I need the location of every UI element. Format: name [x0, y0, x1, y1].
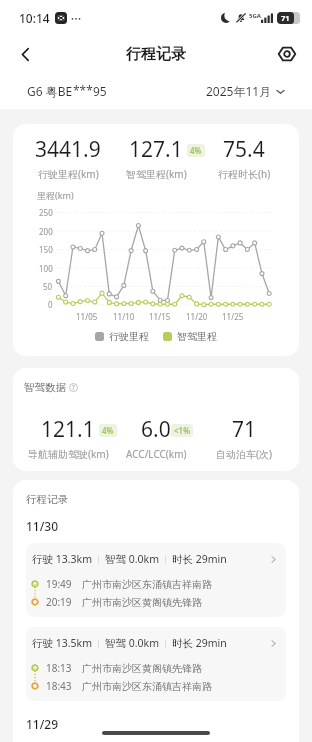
staticText: 150	[39, 244, 53, 255]
staticText: 广州市南沙区黄阁镇先锋路	[82, 596, 202, 609]
staticText: 广州市南沙区东涌镇吉祥南路	[82, 680, 212, 693]
staticText: 4%	[190, 145, 202, 156]
staticText: 11/29	[26, 716, 59, 732]
staticText: 19:49	[46, 577, 72, 591]
staticText: 50	[43, 281, 53, 292]
staticText: 75.4	[223, 135, 265, 164]
staticText: 智驾数据	[24, 381, 66, 394]
staticText: 行驶 13.3km	[32, 552, 92, 566]
staticText: ***	[73, 82, 93, 98]
staticText: 95	[93, 83, 107, 99]
button[interactable]: Settings	[272, 39, 302, 69]
button[interactable]: Back	[10, 39, 40, 69]
staticText: G6 粤BE	[27, 83, 73, 99]
staticText: 自动泊车(次)	[216, 447, 272, 461]
staticText: 智驾 0.0km	[105, 552, 159, 566]
staticText: 6.0	[141, 415, 171, 444]
staticText: 2025年11月	[206, 83, 272, 99]
staticText: 10:14	[19, 10, 50, 26]
staticText: 18:43	[46, 679, 72, 693]
staticText: 11/30	[26, 518, 59, 534]
button[interactable]: 2025年11月	[206, 83, 285, 99]
staticText: 5GA	[249, 12, 261, 20]
staticText: 行驶里程(km)	[38, 167, 99, 181]
staticText: 71	[232, 415, 257, 444]
staticText: 广州市南沙区东涌镇吉祥南路	[82, 578, 212, 591]
staticText: <1%	[174, 425, 190, 436]
staticText: 11/05	[76, 311, 98, 322]
staticText: 行程记录	[26, 493, 68, 506]
button[interactable]: 行驶 13.3km	[26, 543, 286, 617]
staticText: 0	[48, 299, 53, 310]
staticText: ?	[72, 383, 75, 392]
staticText: 20:19	[46, 595, 72, 609]
staticText: 11/15	[149, 311, 171, 322]
staticText: 行驶 13.5km	[32, 636, 92, 650]
staticText: 时长 29min	[172, 552, 227, 566]
staticText: 里程(km)	[37, 189, 74, 201]
staticText: ACC/LCC(km)	[126, 447, 187, 461]
staticText: 11/25	[222, 311, 244, 322]
staticText: 121.1	[41, 415, 95, 444]
staticText: 行程时长(h)	[218, 167, 271, 181]
staticText: 3441.9	[35, 135, 101, 164]
staticText: 100	[39, 263, 53, 274]
staticText: 11/10	[113, 311, 135, 322]
staticText: 71	[281, 13, 290, 23]
staticText: 行驶里程	[109, 330, 149, 343]
staticText: 时长 29min	[172, 636, 227, 650]
staticText: 127.1	[129, 135, 183, 164]
staticText: 行程记录	[126, 45, 186, 64]
staticText: 智驾 0.0km	[105, 636, 159, 650]
staticText: 18:13	[46, 661, 72, 675]
staticText: 4%	[102, 425, 114, 436]
staticText: 智驾里程	[177, 330, 217, 343]
button[interactable]: 行驶 13.5km	[26, 627, 286, 701]
staticText: 200	[39, 226, 53, 237]
button[interactable]: G6 粤BE	[27, 83, 107, 99]
staticText: 广州市南沙区黄阁镇先锋路	[82, 662, 202, 675]
staticText: 智驾里程(km)	[126, 167, 187, 181]
staticText: 导航辅助驾驶(km)	[28, 447, 109, 461]
staticText: 11/20	[186, 311, 208, 322]
staticText: 250	[39, 207, 53, 218]
